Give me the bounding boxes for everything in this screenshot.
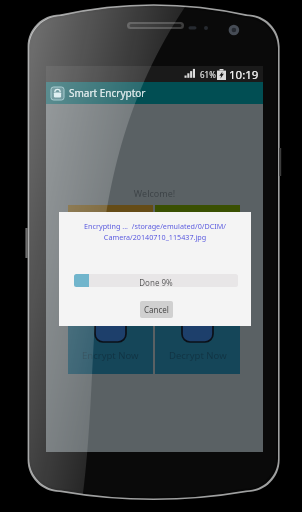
staticText: 10:19	[229, 67, 259, 83]
staticText: Welcome!	[46, 187, 263, 199]
other: Battery	[217, 69, 226, 80]
button[interactable]	[68, 205, 153, 219]
button[interactable]: Encrypt Now	[68, 301, 153, 374]
staticText: Cancel	[144, 304, 169, 315]
staticText: 61%	[200, 69, 216, 80]
button[interactable]: Cancel	[140, 301, 173, 318]
button[interactable]: Decrypt Now	[155, 301, 240, 374]
staticText: Decrypt Now	[169, 349, 227, 362]
button[interactable]	[155, 205, 240, 219]
staticText: Done 9%	[74, 277, 238, 287]
staticText: Smart Encryptor	[69, 86, 146, 100]
button[interactable]: Smart Encryptor	[46, 82, 263, 104]
staticText: Encrypting ... /storage/emulated/0/DCIM/…	[59, 221, 251, 242]
staticText: Encrypt Now	[82, 349, 139, 362]
